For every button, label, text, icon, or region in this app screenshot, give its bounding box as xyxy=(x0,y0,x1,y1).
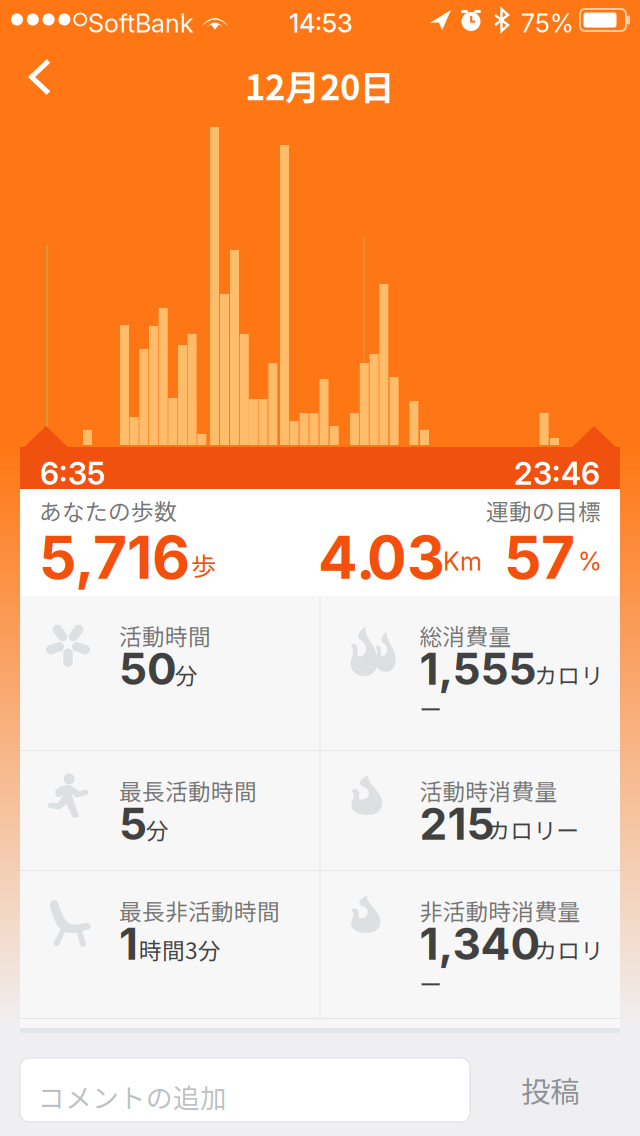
staticText: 時間3分 xyxy=(139,933,221,966)
staticText: 分 xyxy=(146,813,169,846)
staticText: 03 xyxy=(367,522,445,593)
staticText: 活動時間 xyxy=(119,619,211,652)
staticText: Km xyxy=(443,546,482,577)
staticText: 215 xyxy=(419,797,494,850)
staticText: 1 xyxy=(119,917,138,970)
button[interactable]: 投稿 xyxy=(485,1058,615,1122)
staticText: ー xyxy=(419,692,442,725)
staticText: カロリ xyxy=(534,658,603,691)
staticText: 1,555 xyxy=(419,642,536,695)
staticText: 75% xyxy=(521,8,574,39)
staticText: SoftBank xyxy=(88,8,194,39)
staticText: カロリ xyxy=(534,933,603,966)
staticText: 23:46 xyxy=(514,455,600,492)
staticText: 最長活動時間 xyxy=(119,774,257,807)
staticText: ー xyxy=(419,967,442,1000)
staticText: 運動の目標 xyxy=(486,494,601,527)
staticText: 総消費量 xyxy=(419,619,511,652)
staticText: 14:53 xyxy=(289,8,353,39)
staticText: コメントの追加 xyxy=(38,1077,227,1116)
staticText: 5,716 xyxy=(39,522,190,593)
staticText: 4. xyxy=(318,522,376,593)
staticText: カロリー xyxy=(487,813,579,846)
staticText: 非活動時消費量 xyxy=(419,894,580,927)
staticText: 活動時消費量 xyxy=(419,774,557,807)
staticText: 12月20日 xyxy=(245,60,395,110)
staticText: 57 xyxy=(504,522,575,593)
staticText: 歩 xyxy=(191,546,216,583)
staticText: 分 xyxy=(175,658,198,691)
staticText: 最長非活動時間 xyxy=(119,894,280,927)
staticText: 投稿 xyxy=(521,1069,579,1111)
button[interactable]: コメントの追加 xyxy=(20,1058,470,1122)
button[interactable]: Back xyxy=(0,40,80,114)
staticText: あなたの歩数 xyxy=(39,494,177,527)
staticText: % xyxy=(578,546,602,577)
staticText: 5 xyxy=(119,797,147,850)
staticText: 50 xyxy=(119,642,177,695)
staticText: 1,340 xyxy=(419,917,540,970)
staticText: 6:35 xyxy=(40,455,105,492)
